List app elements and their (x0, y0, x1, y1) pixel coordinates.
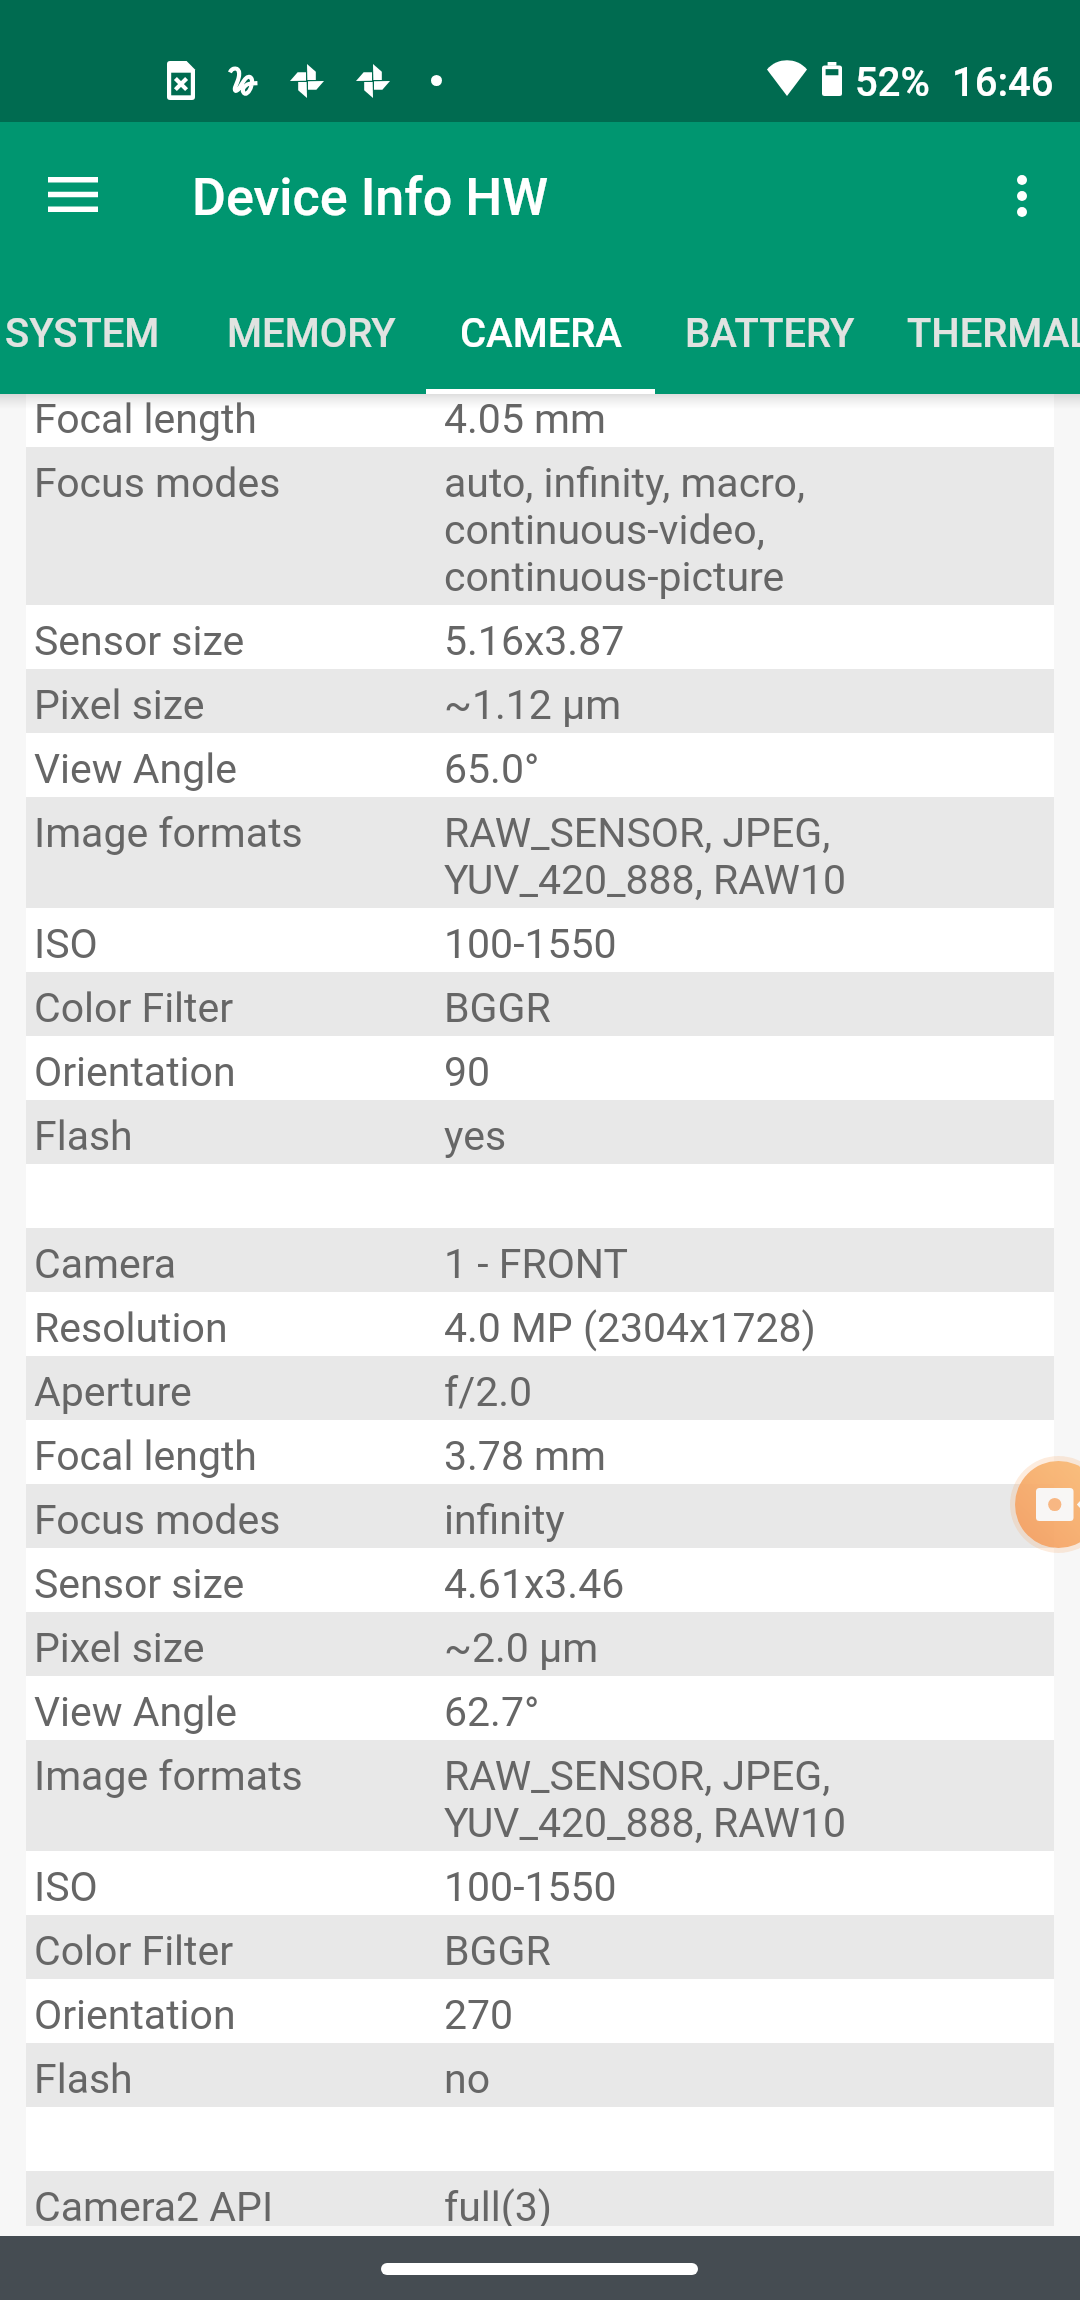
staticText: Aperture (34, 1369, 192, 1416)
staticText: auto, infinity, macro, continuous-video,… (444, 460, 806, 601)
button[interactable]: Resolution (26, 1292, 1054, 1356)
staticText: Image formats (34, 810, 303, 857)
staticText: View Angle (34, 1689, 237, 1736)
button[interactable]: Image formats (26, 1740, 1054, 1851)
staticText: RAW_SENSOR, JPEG, YUV_420_888, RAW10 (444, 1753, 846, 1847)
button[interactable]: Image formats (26, 797, 1054, 908)
staticText: Pixel size (34, 1625, 205, 1672)
staticText: SYSTEM (5, 310, 160, 357)
staticText: full(3) (444, 2184, 553, 2226)
staticText: Focus modes (34, 1497, 281, 1544)
button[interactable]: THERMAL (884, 272, 1080, 394)
button[interactable]: Focal length (26, 394, 1054, 447)
staticText: BGGR (444, 985, 551, 1032)
staticText: infinity (444, 1497, 565, 1544)
staticText: BGGR (444, 1928, 551, 1975)
staticText: ISO (34, 1864, 98, 1911)
staticText: no (444, 2056, 491, 2103)
staticText: Focus modes (34, 460, 281, 507)
button[interactable]: Sensor size (26, 1548, 1054, 1612)
staticText: Camera2 API (34, 2184, 274, 2226)
staticText: CAMERA (460, 310, 622, 357)
staticText: Sensor size (34, 1561, 245, 1608)
button[interactable]: SYSTEM (0, 272, 197, 394)
button[interactable]: Open camera (1015, 1461, 1080, 1548)
staticText: Color Filter (34, 985, 234, 1032)
staticText: Sensor size (34, 618, 245, 665)
button[interactable]: BATTERY (655, 272, 884, 394)
staticText: ISO (34, 921, 98, 968)
staticText: 270 (444, 1992, 514, 2039)
staticText: ~2.0 µm (444, 1625, 599, 1672)
staticText: View Angle (34, 746, 237, 793)
staticText: 3.78 mm (444, 1433, 607, 1480)
button[interactable]: Open navigation drawer (24, 145, 122, 243)
staticText: 5.16x3.87 (444, 618, 625, 665)
staticText: MEMORY (227, 310, 396, 357)
button[interactable]: ISO (26, 1851, 1054, 1915)
button[interactable]: Focal length (26, 1420, 1054, 1484)
button[interactable]: Orientation (26, 1036, 1054, 1100)
button[interactable]: View Angle (26, 1676, 1054, 1740)
staticText: THERMAL (907, 310, 1080, 357)
staticText: Orientation (34, 1049, 236, 1096)
staticText: 1 - FRONT (444, 1241, 628, 1288)
staticText: Image formats (34, 1753, 303, 1800)
staticText: Orientation (34, 1992, 236, 2039)
staticText: Camera (34, 1241, 177, 1288)
button[interactable]: Focus modes (26, 447, 1054, 605)
button[interactable]: Camera (26, 1228, 1054, 1292)
button[interactable]: Color Filter (26, 972, 1054, 1036)
staticText: Flash (34, 1113, 133, 1160)
button[interactable]: Pixel size (26, 1612, 1054, 1676)
button[interactable]: MEMORY (197, 272, 426, 394)
staticText: Focal length (34, 1433, 257, 1480)
staticText: Flash (34, 2056, 133, 2103)
staticText: 4.05 mm (444, 396, 607, 443)
button[interactable]: More options (973, 147, 1071, 245)
staticText: ~1.12 µm (444, 682, 622, 729)
staticText: Device Info HW (192, 167, 549, 228)
staticText: Focal length (34, 396, 257, 443)
button[interactable]: Flash (26, 2043, 1054, 2107)
button[interactable]: CAMERA (426, 272, 655, 394)
button[interactable]: Pixel size (26, 669, 1054, 733)
staticText: 52% (855, 59, 930, 106)
button[interactable]: Flash (26, 1100, 1054, 1164)
staticText: 16:46 (952, 59, 1054, 106)
button[interactable]: Orientation (26, 1979, 1054, 2043)
staticText: Color Filter (34, 1928, 234, 1975)
button[interactable]: Focus modes (26, 1484, 1054, 1548)
staticText: 90 (444, 1049, 491, 1096)
staticText: 65.0° (444, 746, 540, 793)
staticText: RAW_SENSOR, JPEG, YUV_420_888, RAW10 (444, 810, 846, 904)
staticText: Resolution (34, 1305, 228, 1352)
staticText: 4.0 MP (2304x1728) (444, 1305, 816, 1352)
staticText: 100-1550 (444, 1864, 617, 1911)
button[interactable]: View Angle (26, 733, 1054, 797)
staticText: f/2.0 (444, 1369, 533, 1416)
staticText: yes (444, 1113, 507, 1160)
staticText: 100-1550 (444, 921, 617, 968)
button[interactable]: Sensor size (26, 605, 1054, 669)
staticText: BATTERY (685, 310, 855, 357)
button[interactable]: Camera2 API (26, 2171, 1054, 2226)
staticText: 62.7° (444, 1689, 540, 1736)
button[interactable]: Color Filter (26, 1915, 1054, 1979)
staticText: 4.61x3.46 (444, 1561, 625, 1608)
button[interactable]: Aperture (26, 1356, 1054, 1420)
staticText: Pixel size (34, 682, 205, 729)
button[interactable]: ISO (26, 908, 1054, 972)
